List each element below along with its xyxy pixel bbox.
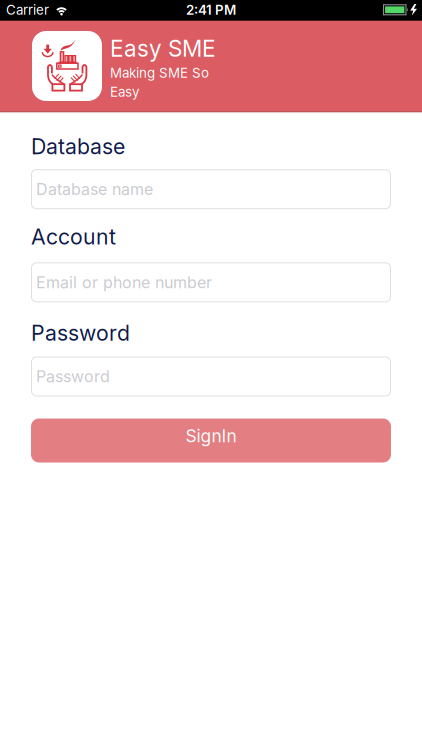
button[interactable]: Password bbox=[31, 356, 391, 396]
staticText: Account bbox=[31, 224, 116, 249]
staticText: Database bbox=[31, 134, 125, 159]
staticText: Password bbox=[36, 367, 110, 386]
staticText: Email or phone number bbox=[36, 273, 212, 292]
staticText: Password bbox=[31, 320, 130, 345]
staticText: Database name bbox=[36, 180, 153, 199]
staticText: Carrier bbox=[6, 2, 49, 18]
staticText: 2:41 PM bbox=[186, 2, 236, 18]
button[interactable]: Email or phone number bbox=[31, 262, 391, 302]
staticText: Making SME So bbox=[110, 65, 209, 81]
button[interactable]: Database name bbox=[31, 169, 391, 209]
staticText: SignIn bbox=[185, 426, 236, 446]
staticText: Easy SME bbox=[110, 35, 216, 62]
staticText: Easy bbox=[110, 84, 139, 100]
button[interactable]: SignIn bbox=[31, 418, 391, 462]
